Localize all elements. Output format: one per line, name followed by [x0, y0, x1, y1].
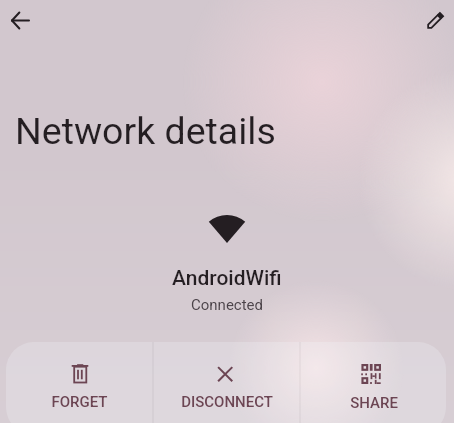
- button[interactable]: SHARE: [301, 342, 446, 423]
- staticText: Connected: [191, 296, 264, 314]
- staticText: Network details: [15, 109, 276, 153]
- button[interactable]: FORGET: [6, 342, 152, 423]
- staticText: DISCONNECT: [181, 393, 273, 411]
- button[interactable]: Edit: [419, 4, 451, 36]
- staticText: SHARE: [350, 394, 398, 412]
- button[interactable]: DISCONNECT: [154, 342, 299, 423]
- staticText: AndroidWifi: [172, 266, 282, 291]
- staticText: FORGET: [51, 393, 108, 411]
- button[interactable]: Navigate up: [4, 4, 36, 36]
